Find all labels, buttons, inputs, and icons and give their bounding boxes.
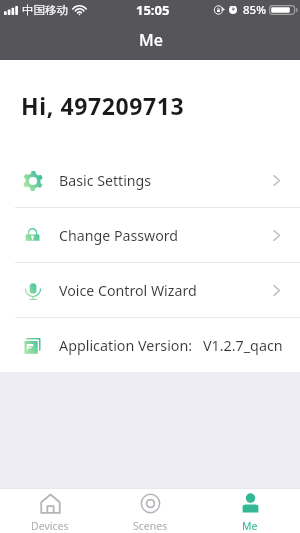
staticText: Scenes xyxy=(133,519,168,533)
staticText: Me xyxy=(242,519,258,533)
staticText: Voice Control Wizard xyxy=(59,281,197,300)
staticText: 15:05 xyxy=(136,1,170,19)
staticText: Hi, 497209713 xyxy=(21,90,185,121)
button[interactable]: Me tab xyxy=(200,489,300,533)
staticText: Me xyxy=(139,29,163,51)
staticText: 85% xyxy=(243,2,266,18)
staticText: 中国移动 xyxy=(22,3,68,17)
staticText: Application Version: xyxy=(59,336,193,355)
button[interactable]: Voice Control Wizard xyxy=(0,263,300,317)
staticText: V1.2.7_qacn xyxy=(203,336,283,355)
button[interactable]: Basic Settings xyxy=(0,153,300,207)
button[interactable]: Devices tab xyxy=(0,489,100,533)
staticText: Devices xyxy=(31,519,69,533)
button[interactable]: Scenes tab xyxy=(100,489,200,533)
staticText: Change Password xyxy=(59,226,179,245)
staticText: Basic Settings xyxy=(59,171,152,190)
button[interactable]: Change Password xyxy=(0,208,300,262)
